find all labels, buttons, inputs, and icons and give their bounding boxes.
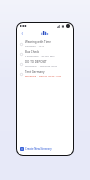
staticText: Wearing with Time <box>25 40 51 44</box>
staticText: DO TO DEPOSIT <box>25 60 47 64</box>
button[interactable]: App logo <box>40 30 50 36</box>
staticText: Remaining · Start Fly 09:30 / 1042 <box>25 75 61 78</box>
staticText: Destination · Tomorrow 08:00 <box>25 65 57 68</box>
staticText: Bus Check <box>25 50 40 54</box>
button[interactable]: Bus Check <box>17 49 73 59</box>
staticText: Create New Itinerary <box>25 147 52 151</box>
staticText: Tent Germany <box>25 70 45 74</box>
button[interactable]: Back <box>19 30 25 36</box>
button[interactable]: Tent Germany <box>17 69 73 79</box>
staticText: 2 Destination · Go this Easy <box>25 55 55 58</box>
button[interactable]: Create New Itinerary <box>17 144 73 153</box>
button[interactable]: Wearing with Time <box>17 39 73 49</box>
button[interactable]: DO TO DEPOSIT <box>17 59 73 69</box>
staticText: Submitted · 10:14 <box>25 45 45 48</box>
